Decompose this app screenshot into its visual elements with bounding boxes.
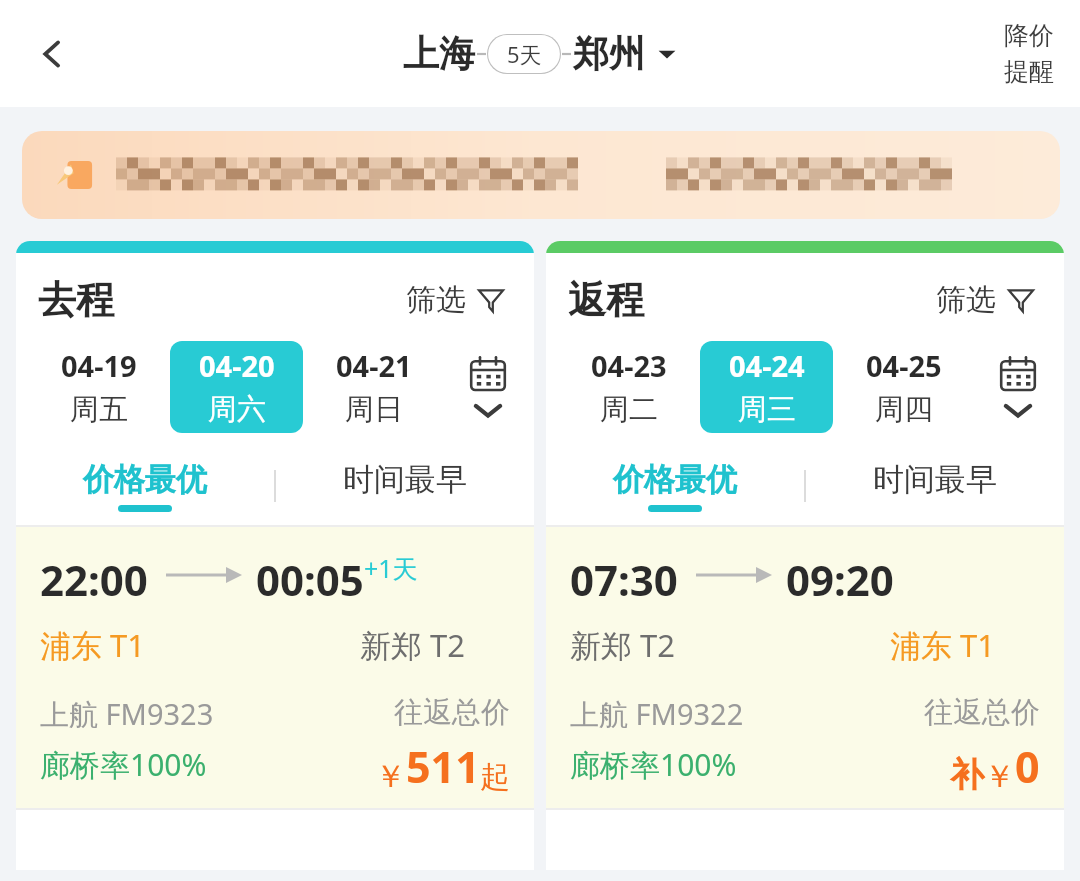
- staticText: 周日: [345, 391, 403, 428]
- button[interactable]: 筛选: [400, 275, 512, 325]
- button[interactable]: 上海: [403, 31, 677, 76]
- staticText: 时间最早: [873, 460, 997, 499]
- staticText: 降价: [1004, 20, 1054, 51]
- button[interactable]: 04-20: [170, 341, 303, 433]
- staticText: ￥: [375, 757, 406, 796]
- staticText: 上航 FM9322: [570, 694, 744, 734]
- staticText: 09:20: [786, 551, 894, 608]
- staticText: 5天: [507, 39, 542, 69]
- staticText: +1天: [364, 551, 418, 585]
- staticText: 新郑 T2: [360, 624, 466, 666]
- button[interactable]: Open calendar: [442, 339, 534, 435]
- staticText: 郑州: [573, 31, 645, 76]
- button[interactable]: 价格最优: [546, 447, 804, 525]
- staticText: 往返总价: [394, 694, 510, 731]
- staticText: 起: [480, 758, 510, 796]
- staticText: 廊桥率100%: [40, 744, 207, 785]
- button[interactable]: 07:30: [546, 527, 1064, 808]
- staticText: 筛选: [406, 281, 466, 319]
- staticText: 周三: [738, 391, 796, 428]
- button[interactable]: 时间最早: [276, 447, 534, 525]
- staticText: 往返总价: [924, 694, 1040, 731]
- staticText: 00:05: [256, 551, 364, 608]
- staticText: 04-23: [591, 346, 667, 385]
- staticText: 511: [406, 737, 480, 796]
- staticText: 廊桥率100%: [570, 744, 737, 785]
- button[interactable]: 04-23: [562, 341, 696, 433]
- staticText: 22:00: [40, 551, 148, 608]
- staticText: 上海: [403, 31, 475, 76]
- staticText: 周二: [600, 391, 658, 428]
- staticText: 浦东 T1: [40, 624, 146, 666]
- button[interactable]: Open calendar: [972, 339, 1064, 435]
- staticText: 04-24: [729, 346, 805, 385]
- staticText: 04-21: [336, 346, 412, 385]
- button[interactable]: 价格最优: [16, 447, 274, 525]
- button[interactable]: 04-21: [307, 341, 440, 433]
- staticText: 提醒: [1004, 56, 1054, 87]
- staticText: 上航 FM9323: [40, 694, 214, 734]
- button[interactable]: 04-19: [32, 341, 166, 433]
- staticText: 时间最早: [343, 460, 467, 499]
- staticText: 浦东 T1: [890, 624, 996, 666]
- button[interactable]: 22:00: [16, 527, 534, 808]
- staticText: 新郑 T2: [570, 624, 676, 666]
- staticText: 04-25: [866, 346, 942, 385]
- staticText: 周四: [875, 391, 933, 428]
- staticText: ￥: [984, 757, 1015, 796]
- staticText: 筛选: [936, 281, 996, 319]
- staticText: 0: [1015, 737, 1040, 796]
- staticText: 去程: [38, 276, 114, 324]
- staticText: 04-19: [61, 346, 137, 385]
- button[interactable]: 筛选: [930, 275, 1042, 325]
- staticText: 04-20: [199, 346, 275, 385]
- staticText: 价格最优: [83, 460, 207, 499]
- button[interactable]: 时间最早: [806, 447, 1064, 525]
- staticText: 07:30: [570, 551, 678, 608]
- staticText: 价格最优: [613, 460, 737, 499]
- staticText: 周五: [70, 391, 128, 428]
- button[interactable]: 04-24: [700, 341, 833, 433]
- button[interactable]: [22, 131, 1060, 219]
- button[interactable]: 04-25: [837, 341, 970, 433]
- staticText: 补: [950, 753, 984, 796]
- staticText: 返程: [568, 276, 644, 324]
- button[interactable]: 降价: [998, 16, 1060, 91]
- staticText: 周六: [208, 391, 266, 428]
- button[interactable]: Back: [16, 18, 88, 90]
